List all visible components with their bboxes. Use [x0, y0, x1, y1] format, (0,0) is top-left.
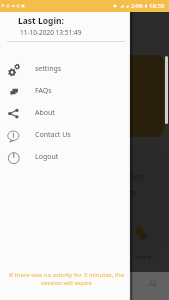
staticText: View all	[134, 253, 154, 260]
staticText: Transfer to	[100, 188, 136, 198]
button[interactable]: Profile	[9, 276, 27, 294]
button[interactable]: Profile	[110, 276, 128, 294]
button[interactable]: Logout	[0, 146, 133, 168]
staticText: 11-10-2020 13:51:49	[20, 28, 82, 37]
button[interactable]: Profile	[143, 276, 161, 294]
staticText: Recent activity	[100, 172, 144, 181]
staticText: 18:56	[149, 2, 165, 10]
staticText: 24%	[131, 2, 143, 10]
staticText: FAQs	[35, 86, 52, 96]
button[interactable]: FAQs	[0, 80, 133, 102]
staticText: Logout	[35, 152, 59, 162]
staticText: Last Login:	[18, 15, 64, 27]
staticText: Contact Us	[35, 130, 71, 140]
staticText: If there was no activity for 3 minutes, …	[3, 271, 130, 287]
button[interactable]: About	[0, 102, 133, 124]
staticText: About	[35, 108, 55, 118]
button[interactable]: Profile	[76, 276, 94, 294]
button[interactable]: Profile	[43, 276, 61, 294]
staticText: settings	[35, 64, 62, 74]
button[interactable]: Contact Us	[0, 124, 133, 146]
button[interactable]: settings	[0, 58, 133, 80]
